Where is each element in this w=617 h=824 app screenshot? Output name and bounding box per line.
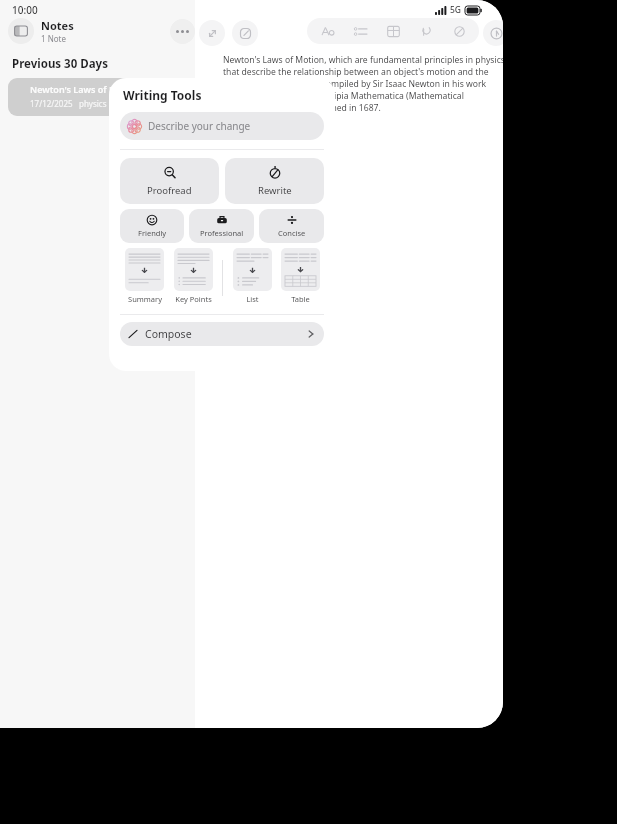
staticText: Professional <box>200 228 244 238</box>
staticText: 10:00 <box>12 3 38 17</box>
staticText: Newton's Laws of Motion <box>30 83 141 95</box>
staticText: List <box>246 294 259 304</box>
button[interactable]: More options <box>170 19 195 44</box>
staticText: Key Points <box>175 294 212 304</box>
staticText: Newton's Laws of Motion, which are funda… <box>223 54 503 66</box>
staticText: forces acting on it, were compiled by Si… <box>223 78 487 90</box>
staticText: Philosophiæ Naturalis Principia Mathemat… <box>223 90 503 102</box>
button[interactable]: Table <box>383 21 403 41</box>
button[interactable]: Newton's Laws of Motion <box>8 78 183 116</box>
staticText: Previous 30 Days <box>12 56 108 72</box>
staticText: Notes <box>41 18 74 33</box>
button[interactable]: Markup <box>449 21 469 41</box>
button[interactable]: Concise <box>259 209 324 243</box>
button[interactable]: Key Points <box>169 248 217 308</box>
staticText: that describe the relationship between a… <box>223 66 489 78</box>
button[interactable]: Lists <box>350 21 370 41</box>
button[interactable]: List <box>228 248 276 308</box>
staticText: physics <box>79 98 107 109</box>
button[interactable]: Describe your change <box>120 112 324 140</box>
staticText: Summary <box>128 294 162 304</box>
button[interactable]: Rewrite <box>225 158 324 204</box>
staticText: 1 Note <box>41 33 66 44</box>
button[interactable]: Compose <box>120 322 324 346</box>
staticText: Compose <box>145 327 192 341</box>
staticText: Friendly <box>138 228 167 238</box>
staticText: Rewrite <box>258 184 292 197</box>
button[interactable]: Compose note <box>232 20 258 46</box>
staticText: 17/12/2025 <box>30 98 73 109</box>
button[interactable]: Text format <box>317 21 337 41</box>
staticText: Natural Philosophy), published in 1687. <box>223 102 381 114</box>
button[interactable]: Friendly <box>120 209 184 243</box>
button[interactable]: Apple Intelligence <box>483 20 503 46</box>
button[interactable]: Professional <box>189 209 254 243</box>
button[interactable]: Table <box>276 248 324 308</box>
button[interactable]: Expand <box>199 20 225 46</box>
staticText: Table <box>291 294 310 304</box>
button[interactable]: Attach <box>416 21 436 41</box>
staticText: 5G <box>450 4 462 16</box>
staticText: Writing Tools <box>123 87 202 103</box>
staticText: Concise <box>278 228 306 238</box>
staticText: Describe your change <box>148 119 251 133</box>
button[interactable]: Proofread <box>120 158 219 204</box>
button[interactable]: Summary <box>120 248 169 308</box>
staticText: Proofread <box>147 184 192 197</box>
button[interactable]: Toggle sidebar <box>8 18 34 44</box>
